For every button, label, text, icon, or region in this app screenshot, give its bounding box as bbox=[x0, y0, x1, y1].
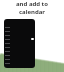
button[interactable] bbox=[5, 45, 34, 49]
button[interactable]: Toggle bbox=[5, 37, 34, 41]
staticText: and add to bbox=[0, 0, 64, 8]
button[interactable] bbox=[5, 57, 34, 61]
button[interactable] bbox=[5, 29, 34, 33]
button[interactable] bbox=[5, 49, 34, 53]
button[interactable] bbox=[5, 53, 34, 57]
other: Toggle bbox=[31, 38, 34, 40]
button[interactable] bbox=[5, 25, 34, 29]
button[interactable] bbox=[5, 41, 34, 45]
staticText: calendar bbox=[0, 8, 64, 16]
button[interactable] bbox=[5, 61, 34, 65]
button[interactable] bbox=[5, 33, 34, 37]
